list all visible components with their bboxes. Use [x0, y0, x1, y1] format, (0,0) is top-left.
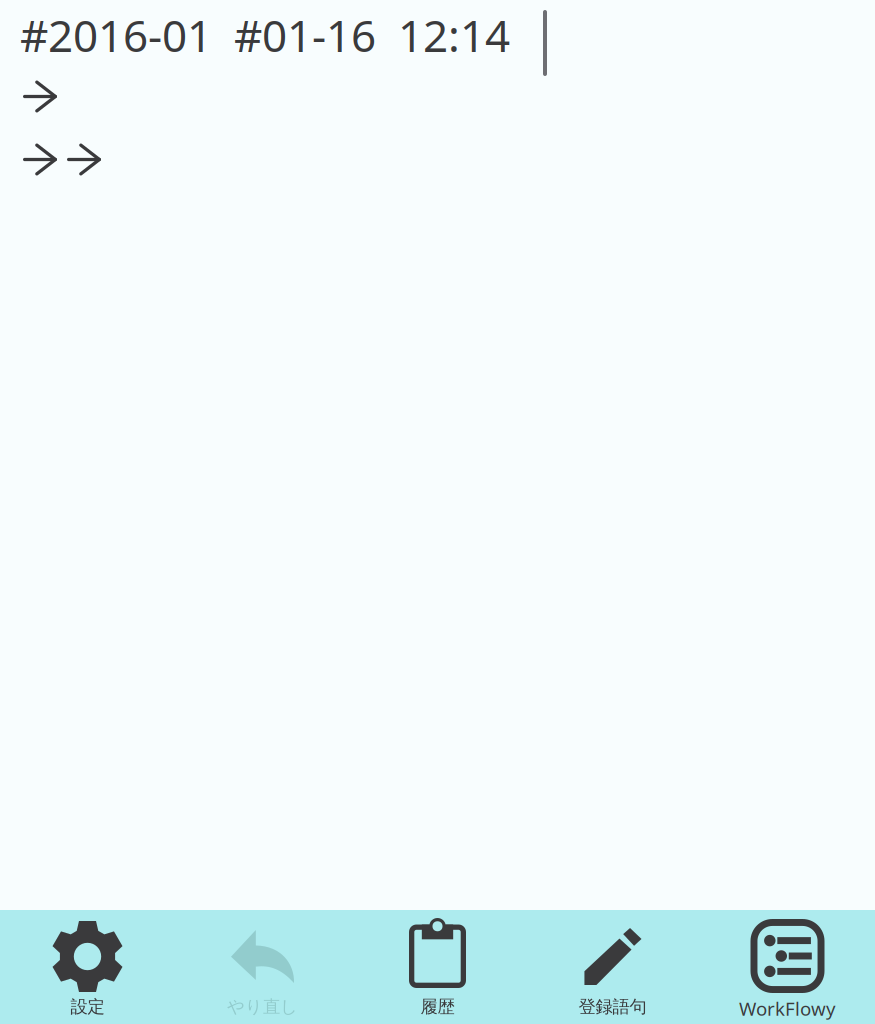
staticText: 設定: [70, 996, 104, 1017]
button[interactable]: WorkFlowy: [700, 910, 875, 1024]
button[interactable]: 履歴: [350, 910, 525, 1024]
staticText: やり直し: [227, 996, 298, 1017]
staticText: 登録語句: [578, 996, 646, 1017]
staticText: 履歴: [420, 996, 454, 1017]
button[interactable]: やり直し: [175, 910, 350, 1024]
staticText: WorkFlowy: [739, 996, 836, 1021]
button[interactable]: 登録語句: [525, 910, 700, 1024]
button[interactable]: 設定: [0, 910, 175, 1024]
staticText: #2016-01 #01-16 12:14: [20, 6, 510, 64]
